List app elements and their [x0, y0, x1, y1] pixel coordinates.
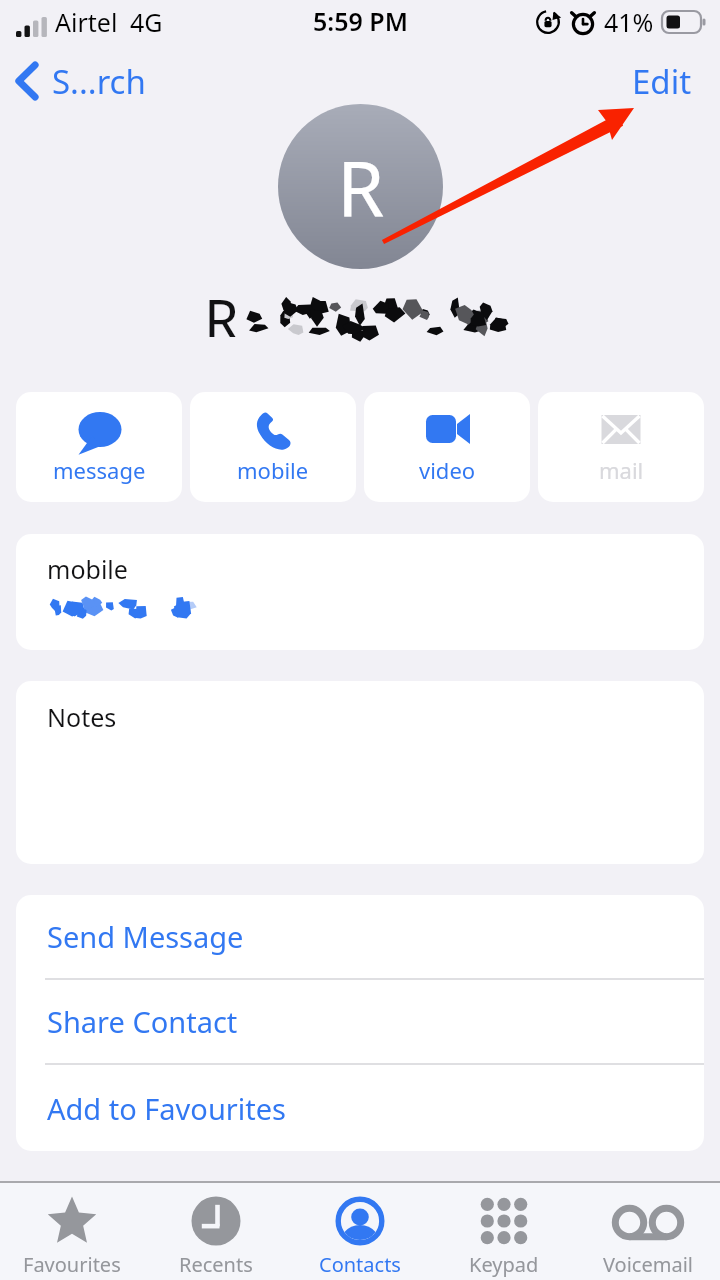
staticText: 41% — [604, 5, 654, 39]
staticText: R — [204, 281, 239, 337]
staticText: 5:59 PM — [313, 4, 408, 38]
button[interactable]: Notes — [16, 681, 704, 864]
staticText: S...rch — [52, 59, 146, 104]
button[interactable]: Contacts — [288, 1183, 432, 1278]
other: Annotation arrow — [0, 0, 720, 1280]
staticText: R — [337, 136, 385, 240]
staticText: Send Message — [47, 917, 244, 956]
button[interactable]: Edit — [616, 50, 720, 112]
staticText: Voicemail — [603, 1251, 693, 1278]
button[interactable]: mobile — [190, 392, 356, 502]
button[interactable]: Add to Favourites — [16, 1065, 704, 1151]
button[interactable]: video — [364, 392, 530, 502]
staticText: video — [419, 455, 476, 485]
button[interactable]: S...rch — [0, 50, 156, 112]
staticText: mail — [599, 455, 644, 485]
button[interactable]: Voicemail — [576, 1183, 720, 1278]
staticText: Recents — [179, 1251, 253, 1278]
staticText: Edit — [632, 59, 692, 104]
button[interactable]: Keypad — [432, 1183, 576, 1278]
staticText: 4G — [130, 5, 163, 39]
staticText: Contacts — [319, 1251, 401, 1278]
staticText: mobile — [47, 552, 128, 586]
button[interactable]: mail — [538, 392, 704, 502]
staticText: Favourites — [23, 1251, 121, 1278]
staticText: Airtel — [55, 5, 118, 39]
button[interactable]: Share Contact — [16, 980, 704, 1065]
button[interactable]: Send Message — [16, 895, 704, 980]
button[interactable]: Favourites — [0, 1183, 144, 1278]
staticText: Add to Favourites — [47, 1089, 286, 1128]
button[interactable]: mobile — [16, 534, 704, 650]
staticText: message — [53, 455, 146, 485]
staticText: Notes — [47, 700, 117, 734]
staticText: Keypad — [469, 1251, 539, 1278]
button[interactable]: message — [16, 392, 182, 502]
staticText: mobile — [237, 455, 309, 485]
staticText: Share Contact — [47, 1002, 238, 1041]
button[interactable]: Recents — [144, 1183, 288, 1278]
